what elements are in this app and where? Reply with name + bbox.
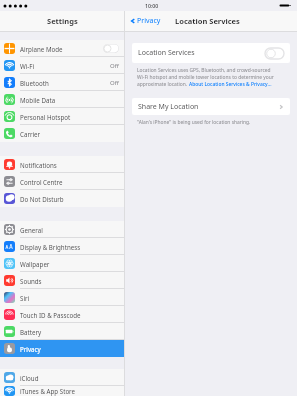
staticText: Personal Hotspot [20, 113, 71, 121]
staticText: Display & Brightness [20, 243, 81, 251]
button[interactable]: Siri [0, 289, 124, 306]
button[interactable]: Bluetooth [0, 74, 124, 91]
staticText: Siri [20, 294, 30, 302]
button[interactable]: Location Services [132, 43, 290, 63]
staticText: iCloud [20, 374, 39, 382]
staticText: iTunes & App Store [20, 387, 76, 395]
button[interactable]: iTunes & App Store [0, 386, 124, 396]
button[interactable]: Notifications [0, 156, 124, 173]
button[interactable]: Battery [0, 323, 124, 340]
button[interactable]: Sounds [0, 272, 124, 289]
staticText: Airplane Mode [20, 45, 63, 53]
button[interactable]: iCloud [0, 369, 124, 386]
button[interactable]: Touch ID & Passcode [0, 306, 124, 323]
staticText: Mobile Data [20, 96, 56, 104]
button[interactable]: Control Centre [0, 173, 124, 190]
staticText: About Location Services & Privacy... [189, 81, 272, 88]
button[interactable]: Carrier [0, 125, 124, 142]
staticText: Bluetooth [20, 79, 49, 87]
staticText: Carrier [20, 130, 41, 138]
staticText: Wi-Fi [20, 62, 35, 70]
button[interactable]: Airplane Mode [0, 40, 124, 57]
staticText: Control Centre [20, 178, 63, 186]
button[interactable]: Wi-Fi [0, 57, 124, 74]
staticText: Location Services [138, 48, 195, 58]
staticText: Battery [20, 328, 42, 336]
button[interactable]: About Location Services & Privacy... [189, 81, 272, 88]
button[interactable]: Privacy [0, 340, 124, 357]
staticText: Wi-Fi hotspot and mobile tower locations… [137, 74, 274, 81]
button[interactable]: Airplane Mode toggle [103, 44, 119, 53]
button[interactable]: Personal Hotspot [0, 108, 124, 125]
button[interactable]: Do Not Disturb [0, 190, 124, 207]
staticText: Wallpaper [20, 260, 50, 268]
button[interactable]: Wallpaper [0, 255, 124, 272]
staticText: Touch ID & Passcode [20, 311, 81, 319]
staticText: approximate location. [137, 81, 189, 88]
button[interactable]: General [0, 221, 124, 238]
button[interactable]: Mobile Data [0, 91, 124, 108]
staticText: Share My Location [138, 102, 199, 112]
staticText: Do Not Disturb [20, 195, 64, 203]
staticText: Notifications [20, 161, 57, 169]
staticText: General [20, 226, 43, 234]
button[interactable]: Location Services toggle [265, 48, 284, 59]
staticText: 10:00 [145, 2, 159, 9]
staticText: Location Services uses GPS, Bluetooth, a… [137, 67, 271, 74]
staticText: Privacy [137, 16, 161, 26]
button[interactable]: Display & Brightness [0, 238, 124, 255]
staticText: "Alan's iPhone" is being used for locati… [137, 119, 251, 126]
staticText: Privacy [20, 345, 41, 353]
staticText: Off [110, 62, 119, 70]
staticText: Location Services [175, 16, 240, 26]
button[interactable]: Privacy [128, 13, 163, 29]
button[interactable]: Share My Location [132, 98, 290, 115]
staticText: Sounds [20, 277, 42, 285]
staticText: Off [110, 79, 119, 87]
staticText: Settings [47, 16, 78, 26]
